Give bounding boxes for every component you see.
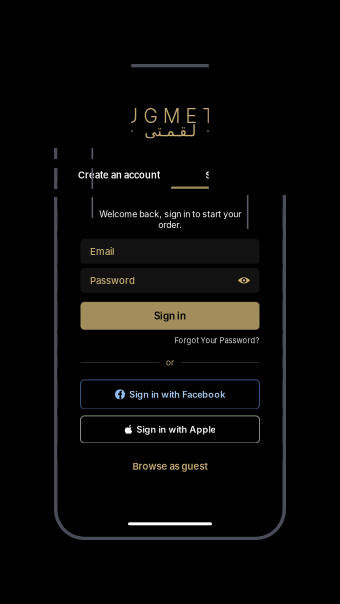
staticText: Forgot Your Password? — [174, 336, 259, 345]
staticText: or — [166, 357, 174, 367]
staticText: Welcome back, sign in to start your orde… — [99, 209, 241, 230]
staticText: Create an account — [78, 169, 160, 181]
staticText: Browse as guest — [132, 461, 207, 472]
staticText: Sign in — [205, 169, 235, 181]
staticText: Sign in with Facebook — [129, 389, 225, 400]
button[interactable]: Create an account — [68, 168, 169, 181]
staticText: لـقـمـتي — [144, 122, 196, 140]
staticText: M — [163, 104, 180, 128]
button[interactable]: Sign in with Facebook — [80, 380, 259, 409]
button[interactable]: Sign in with Apple — [80, 416, 259, 443]
button[interactable]: Email — [80, 239, 259, 264]
button[interactable]: Browse as guest — [132, 461, 207, 472]
staticText: Password — [90, 275, 135, 286]
staticText: Email — [90, 246, 114, 257]
staticText: U — [124, 104, 138, 128]
staticText: G — [143, 104, 157, 128]
staticText: T — [202, 104, 214, 128]
button[interactable]: Password — [80, 268, 259, 293]
staticText: Sign in with Apple — [136, 424, 215, 435]
button[interactable]: Sign in — [80, 302, 259, 330]
staticText: Sign in — [154, 310, 186, 322]
button[interactable]: Sign in — [169, 168, 271, 181]
button[interactable]: Forgot Your Password? — [174, 335, 259, 346]
staticText: E — [186, 104, 197, 128]
